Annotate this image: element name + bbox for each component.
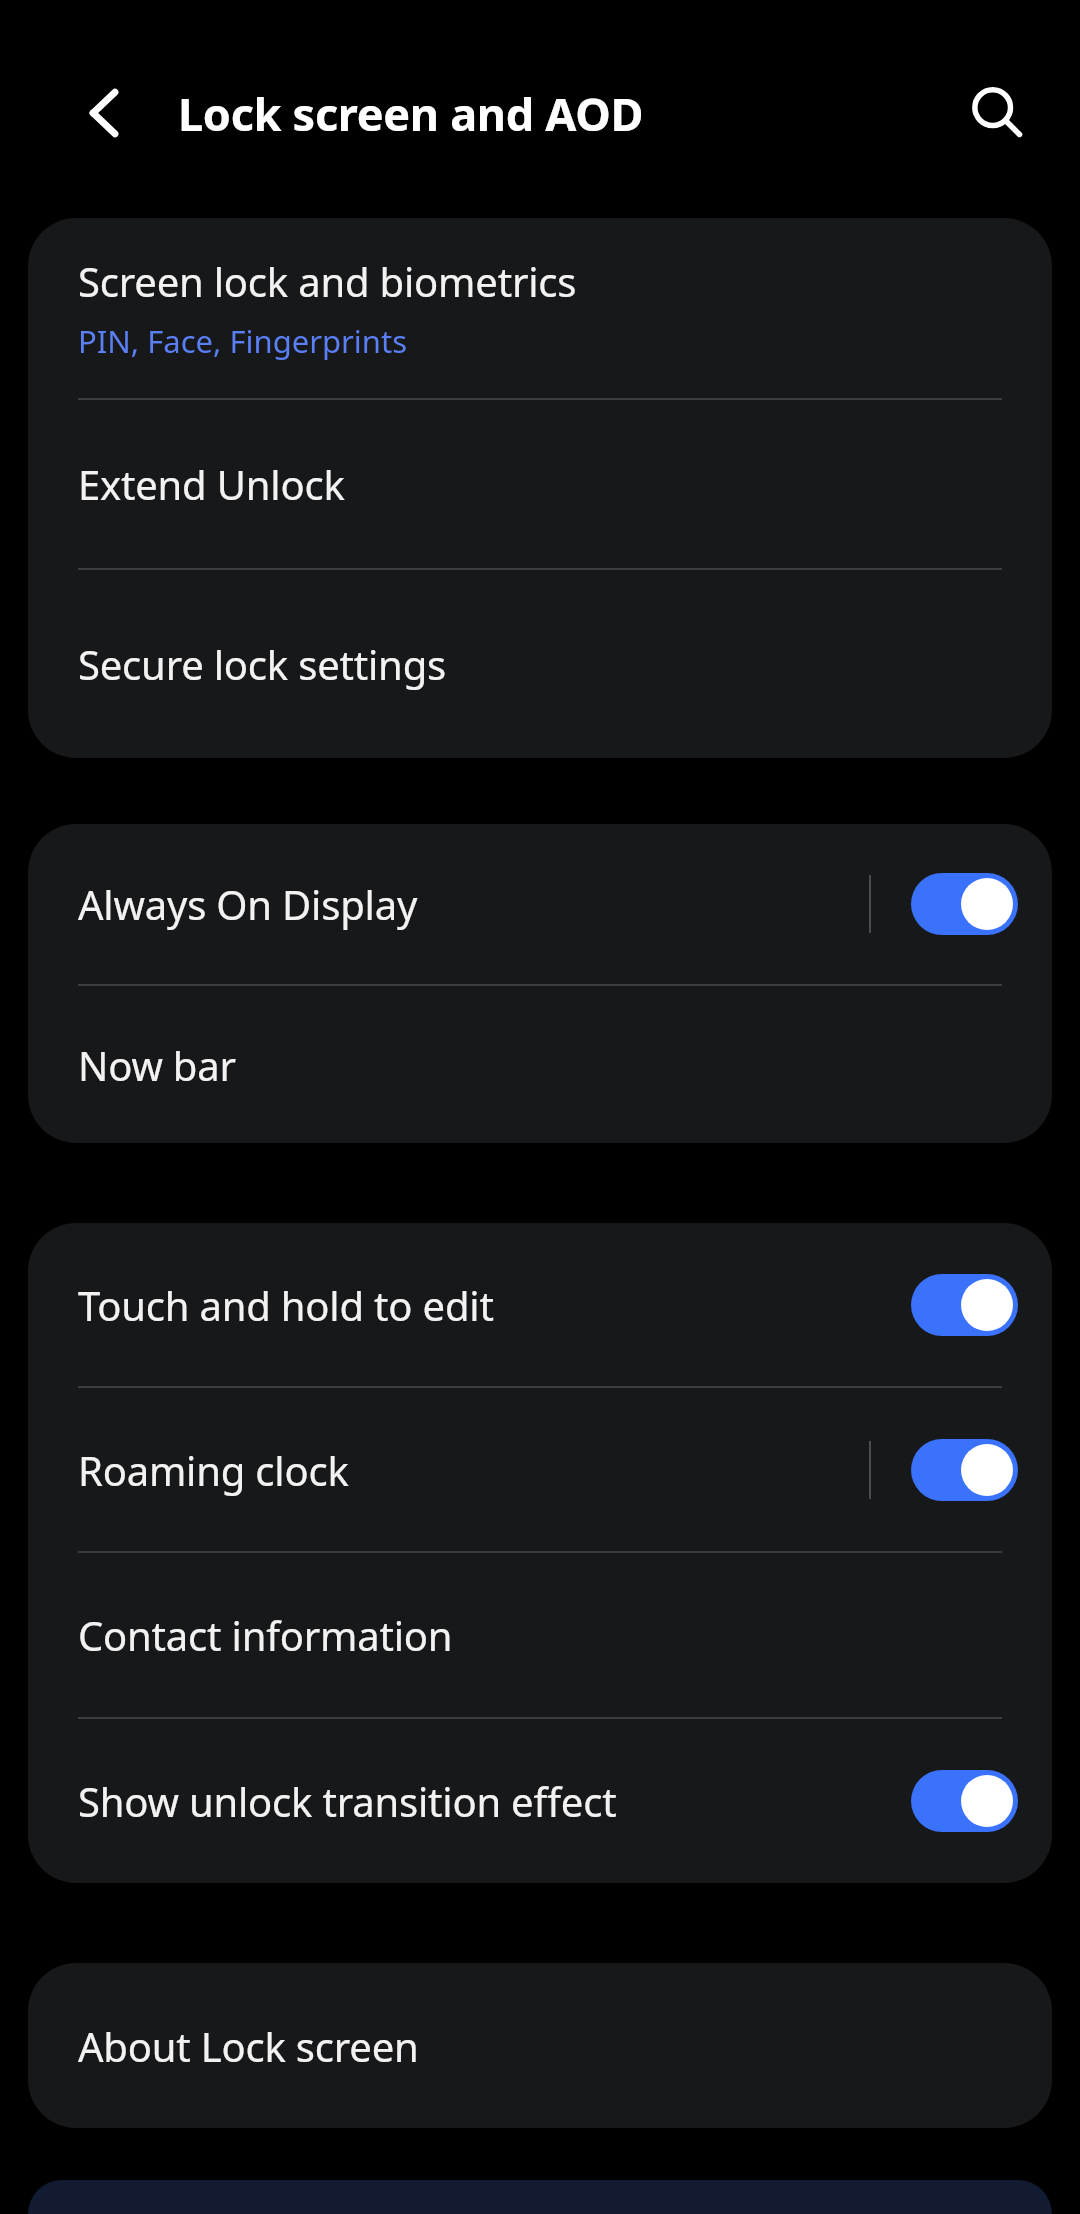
button[interactable]: More options [28,2180,1052,2214]
button[interactable]: Toggle on [911,1274,1018,1336]
button[interactable]: Roaming clock [28,1388,1052,1551]
button[interactable]: About Lock screen [28,1963,1052,2128]
staticText: Roaming clock [78,1443,349,1497]
staticText: Secure lock settings [78,637,446,691]
button[interactable]: Toggle on [911,1439,1018,1501]
staticText: Always On Display [78,877,418,931]
staticText: Lock screen and AOD [178,83,644,144]
staticText: Contact information [78,1608,453,1662]
staticText: Screen lock and biometrics [78,254,577,308]
button[interactable]: Always On Display [28,824,1052,984]
staticText: PIN, Face, Fingerprints [78,320,408,362]
button[interactable]: Search [942,58,1052,168]
staticText: About Lock screen [78,2019,419,2073]
button[interactable]: Now bar [28,986,1052,1143]
button[interactable]: Show unlock transition effect [28,1719,1052,1883]
button[interactable]: Toggle on [911,873,1018,935]
button[interactable]: Toggle on [911,1770,1018,1832]
button[interactable]: Contact information [28,1553,1052,1717]
button[interactable]: Secure lock settings [28,570,1052,758]
staticText: Touch and hold to edit [78,1278,494,1332]
staticText: Now bar [78,1038,236,1092]
button[interactable]: Extend Unlock [28,400,1052,568]
staticText: Extend Unlock [78,457,345,511]
button[interactable]: Back [52,59,160,167]
staticText: Show unlock transition effect [78,1774,617,1828]
button[interactable]: Screen lock and biometrics [28,218,1052,398]
button[interactable]: Touch and hold to edit [28,1223,1052,1386]
